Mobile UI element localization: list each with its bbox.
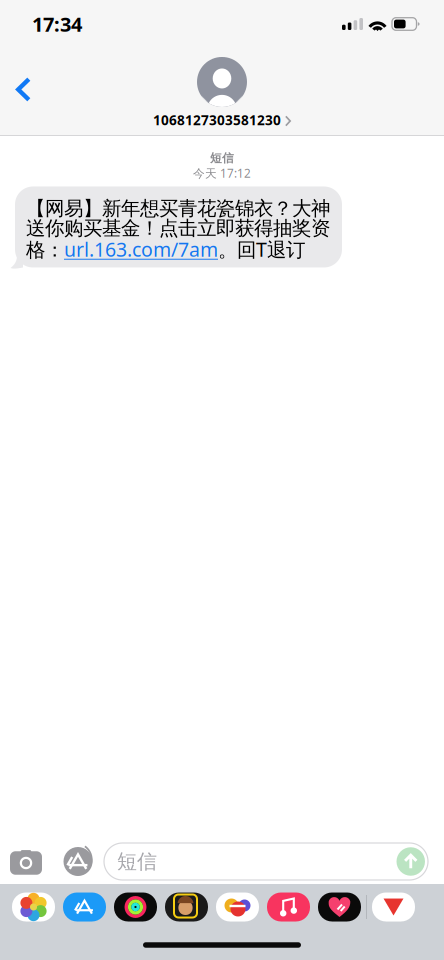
button[interactable]: More: [369, 889, 418, 925]
button[interactable]: Memoji: [162, 889, 211, 925]
button[interactable]: App Store: [60, 889, 109, 925]
staticText: 今天 17:12: [193, 165, 251, 181]
button[interactable]: Activity: [111, 889, 160, 925]
staticText: 【网易】新年想买青花瓷锦衣？大神送你购买基金！点击立即获得抽奖资格：url.16…: [26, 196, 330, 262]
button[interactable]: Photos: [9, 889, 58, 925]
staticText: 1068127303581230: [153, 111, 281, 129]
button[interactable]: 1068127303581230: [147, 107, 297, 133]
button[interactable]: Stickers: [213, 889, 262, 925]
button[interactable]: Send: [396, 847, 428, 876]
staticText: 17:34: [32, 11, 82, 37]
button[interactable]: Apps: [52, 840, 104, 882]
staticText: 短信: [117, 849, 157, 874]
button[interactable]: Back: [0, 64, 47, 115]
button[interactable]: Camera: [0, 840, 52, 882]
button[interactable]: Fitness: [315, 889, 364, 925]
staticText: 短信: [210, 151, 234, 165]
button[interactable]: Music: [264, 889, 313, 925]
